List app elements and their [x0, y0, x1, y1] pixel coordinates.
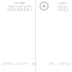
staticText: Edit · Settings [49, 62, 70, 65]
staticText: Updated just now · Sync [1, 62, 36, 65]
staticText: TODAY [58, 1, 67, 5]
staticText: THIS WEEK [13, 1, 25, 5]
